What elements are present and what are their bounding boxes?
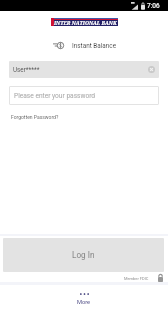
button[interactable]: Forgotten Password? <box>8 111 62 123</box>
staticText: Please enter your password <box>14 92 96 100</box>
staticText: More <box>77 299 91 306</box>
button[interactable]: User***** <box>9 61 159 78</box>
staticText: Instant Balance <box>72 42 117 50</box>
staticText: Member FDIC <box>124 276 149 281</box>
button[interactable]: More <box>0 285 168 310</box>
other: Clear username <box>148 66 155 73</box>
button[interactable]: Please enter your password <box>9 86 159 105</box>
staticText: User***** <box>13 66 40 73</box>
staticText: Log In <box>72 250 95 260</box>
button[interactable]: Log In <box>3 238 164 272</box>
button[interactable]: Instant Balance <box>50 38 120 53</box>
staticText: 7:06 <box>147 2 160 10</box>
staticText: INTER NATIONAL BANK <box>54 20 117 27</box>
